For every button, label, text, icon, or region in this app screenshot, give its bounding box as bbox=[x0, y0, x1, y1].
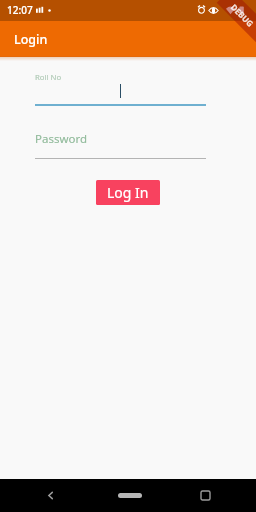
button[interactable]: Home bbox=[118, 493, 142, 498]
staticText: DEBUG bbox=[229, 1, 256, 29]
staticText: Log In bbox=[107, 183, 149, 202]
staticText: 12:07 bbox=[7, 3, 33, 17]
staticText: Password bbox=[35, 131, 88, 147]
button[interactable]: Recents bbox=[201, 491, 210, 500]
staticText: Login bbox=[14, 31, 48, 48]
button[interactable]: Back bbox=[46, 491, 55, 500]
button[interactable]: Log In bbox=[96, 180, 160, 205]
staticText: Roll No bbox=[35, 72, 62, 83]
